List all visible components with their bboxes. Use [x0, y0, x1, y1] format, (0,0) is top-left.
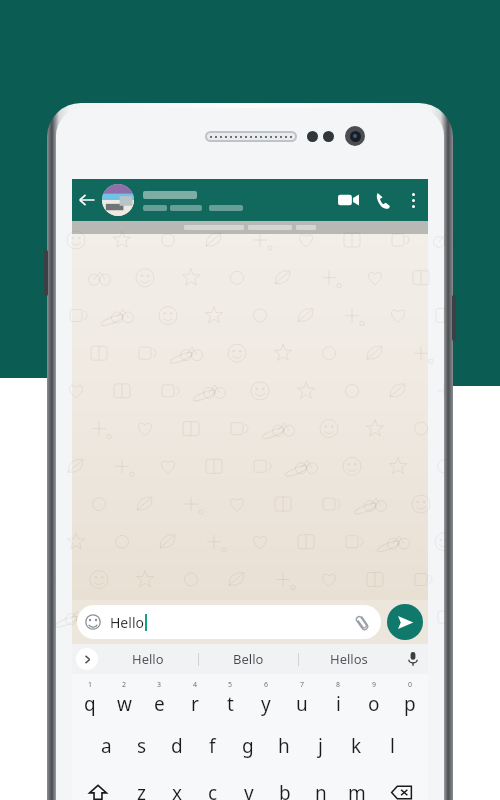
button[interactable]: k — [338, 722, 374, 769]
staticText: i — [336, 691, 341, 717]
staticText: h — [278, 733, 290, 759]
staticText: Bello — [233, 650, 264, 668]
staticText: l — [390, 733, 395, 759]
button[interactable]: Send — [387, 604, 423, 640]
staticText: e — [154, 691, 165, 717]
staticText: 4 — [193, 680, 198, 690]
staticText: c — [208, 780, 218, 800]
staticText: s — [137, 733, 147, 759]
staticText: 9 — [372, 680, 377, 690]
button[interactable]: 7 — [284, 674, 320, 722]
button[interactable]: 1 — [72, 674, 107, 722]
button[interactable] — [143, 179, 330, 221]
button[interactable]: 8 — [320, 674, 356, 722]
staticText: Hellos — [330, 650, 368, 668]
staticText: 0 — [408, 680, 413, 690]
staticText: 8 — [336, 680, 341, 690]
button[interactable]: Attach — [353, 612, 373, 632]
button[interactable]: Bello — [199, 644, 298, 674]
staticText: x — [172, 780, 183, 800]
button[interactable]: 3 — [142, 674, 177, 722]
staticText: b — [279, 780, 291, 800]
button[interactable]: n — [303, 769, 339, 800]
button[interactable]: s — [124, 722, 159, 769]
staticText: f — [209, 733, 216, 759]
button[interactable]: Hello — [77, 605, 381, 639]
button[interactable]: 4 — [177, 674, 212, 722]
staticText: y — [261, 691, 271, 717]
staticText: w — [117, 691, 132, 717]
staticText: j — [318, 733, 323, 759]
staticText: o — [368, 691, 380, 717]
staticText: q — [84, 691, 96, 717]
staticText: 2 — [122, 680, 127, 690]
button[interactable]: Video call — [330, 179, 366, 221]
button[interactable]: Shift — [72, 769, 124, 800]
button[interactable]: 6 — [248, 674, 284, 722]
button[interactable]: z — [124, 769, 159, 800]
staticText: 5 — [228, 680, 233, 690]
button[interactable]: 9 — [356, 674, 392, 722]
staticText: Hello — [110, 613, 144, 632]
button[interactable]: Contact photo — [102, 184, 134, 216]
button[interactable]: x — [159, 769, 195, 800]
button[interactable]: Expand suggestions — [76, 648, 98, 670]
button[interactable]: f — [194, 722, 230, 769]
button[interactable]: 2 — [107, 674, 142, 722]
button[interactable]: c — [195, 769, 231, 800]
button[interactable]: Call — [366, 179, 400, 221]
staticText: v — [244, 780, 254, 800]
button[interactable]: 5 — [212, 674, 248, 722]
staticText: d — [171, 733, 183, 759]
button[interactable]: g — [230, 722, 266, 769]
button[interactable]: l — [374, 722, 410, 769]
staticText: n — [315, 780, 327, 800]
staticText: 3 — [157, 680, 162, 690]
staticText: 6 — [264, 680, 269, 690]
button[interactable]: Back — [72, 179, 102, 221]
button[interactable]: Hello — [98, 644, 198, 674]
staticText: Hello — [132, 650, 164, 668]
staticText: z — [137, 780, 146, 800]
button[interactable]: j — [302, 722, 338, 769]
staticText: p — [404, 691, 416, 717]
staticText: k — [351, 733, 362, 759]
button[interactable]: v — [231, 769, 267, 800]
staticText: 7 — [300, 680, 305, 690]
button[interactable]: a — [89, 722, 124, 769]
staticText: u — [296, 691, 308, 717]
button[interactable]: d — [159, 722, 194, 769]
button[interactable]: More options — [400, 179, 426, 221]
staticText: 1 — [88, 680, 93, 690]
staticText: t — [227, 691, 234, 717]
staticText: g — [242, 733, 254, 759]
button[interactable]: Hellos — [299, 644, 398, 674]
button[interactable]: m — [339, 769, 375, 800]
staticText: m — [348, 780, 366, 800]
staticText: a — [101, 733, 112, 759]
button[interactable]: 0 — [392, 674, 428, 722]
button[interactable]: Backspace — [375, 769, 428, 800]
button[interactable]: Voice input — [398, 644, 428, 674]
button[interactable]: h — [266, 722, 302, 769]
button[interactable]: b — [267, 769, 303, 800]
staticText: r — [191, 691, 199, 717]
